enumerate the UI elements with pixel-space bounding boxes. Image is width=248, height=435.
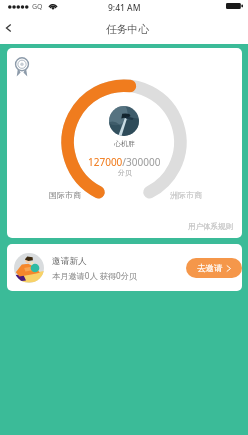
button[interactable]: 去邀请 [186,258,242,278]
staticText: 用户体系规则 [188,222,233,231]
staticText: 任务中心 [106,23,150,37]
staticText: 分贝 [118,168,132,177]
staticText: 邀请新人 [52,256,87,267]
staticText: 9:41 AM [108,2,141,14]
button[interactable]: 用户体系规则 [185,220,236,233]
staticText: GQ [32,2,43,12]
button[interactable]: Back [0,16,23,39]
staticText: 洲际市商 [170,190,202,200]
staticText: 127000/300000 [88,155,161,169]
staticText: 本月邀请0人 获得0分贝 [52,270,138,281]
staticText: 国际市商 [49,190,81,200]
staticText: 去邀请 [197,263,223,274]
staticText: 心机胖 [114,139,135,148]
